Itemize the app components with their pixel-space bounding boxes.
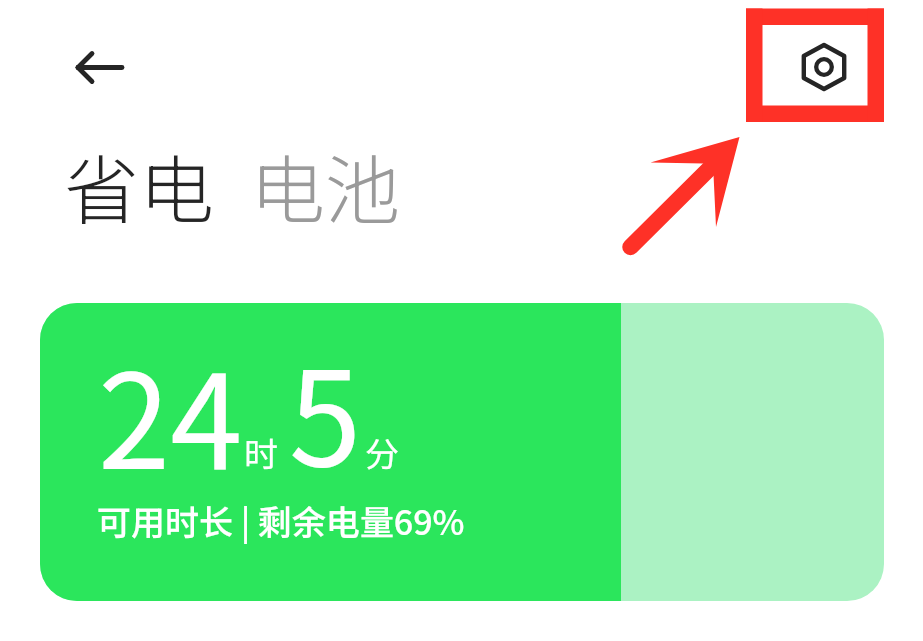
staticText: 可用时长 | 剩余电量69%	[97, 496, 465, 545]
staticText: 分	[365, 428, 399, 477]
button[interactable]: Back	[56, 43, 120, 91]
button[interactable]: 电池	[250, 131, 401, 240]
button[interactable]: 省电	[64, 131, 215, 240]
staticText: 时	[244, 428, 278, 477]
button[interactable]: 24	[40, 303, 884, 601]
button[interactable]: Settings	[794, 37, 854, 97]
staticText: 24	[98, 318, 243, 506]
staticText: 5	[289, 315, 362, 503]
